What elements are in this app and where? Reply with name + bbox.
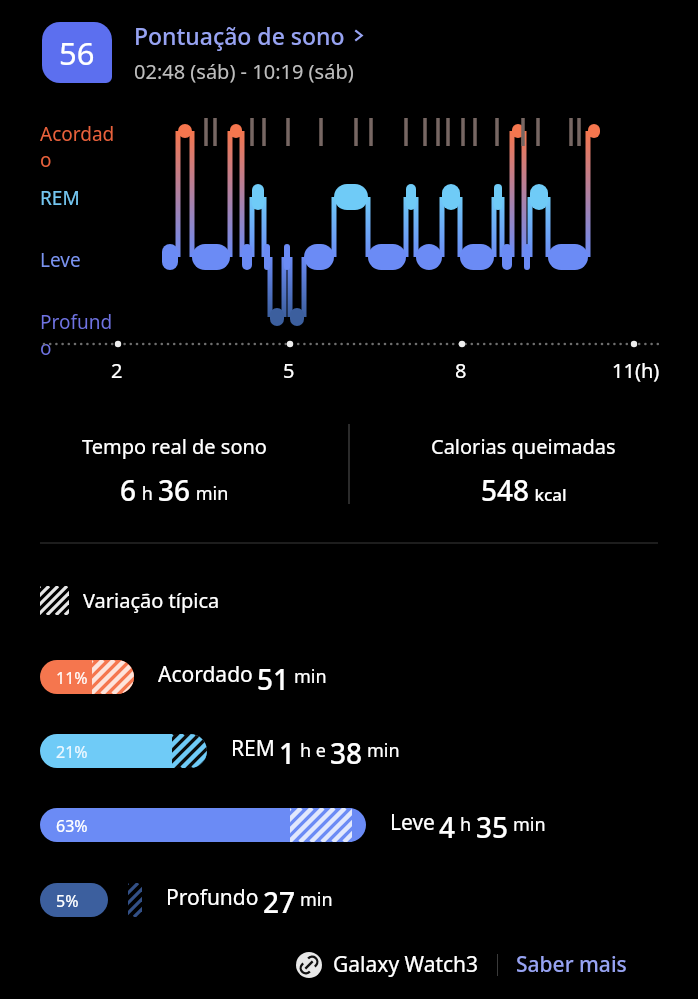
staticText: 21% xyxy=(56,741,88,763)
staticText: Leve xyxy=(40,247,81,273)
button[interactable]: 5% xyxy=(0,873,698,927)
staticText: min xyxy=(191,481,229,506)
staticText: Variação típica xyxy=(83,587,220,614)
staticText: 63% xyxy=(56,815,88,837)
staticText: min xyxy=(294,664,327,689)
staticText: 02:48 (sáb) - 10:19 (sáb) xyxy=(134,58,354,85)
staticText: 38 xyxy=(330,734,363,766)
button[interactable]: 11% xyxy=(0,650,698,704)
staticText: h xyxy=(460,812,472,837)
staticText: 51 xyxy=(257,660,290,692)
staticText: 1 xyxy=(279,734,296,766)
staticText: Acordado xyxy=(158,660,253,689)
staticText: 56 xyxy=(59,32,95,74)
button[interactable]: Connected device Galaxy Watch3 xyxy=(296,952,322,978)
staticText: 35 xyxy=(476,808,509,840)
staticText: 2 xyxy=(111,357,123,384)
button[interactable]: Calorias queimadas xyxy=(349,433,698,509)
button[interactable]: Saber mais xyxy=(516,950,627,979)
staticText: 11% xyxy=(56,667,88,689)
staticText: 8 xyxy=(455,357,467,384)
staticText: 5% xyxy=(56,890,79,912)
staticText: kcal xyxy=(530,483,567,506)
staticText: Leve xyxy=(390,808,435,837)
staticText: h xyxy=(137,481,158,506)
staticText: 27 xyxy=(263,883,296,915)
staticText: Profund o xyxy=(40,309,113,361)
staticText: 36 xyxy=(158,471,191,509)
staticText: h e xyxy=(300,738,326,763)
button[interactable]: 21% xyxy=(0,724,698,778)
staticText: min xyxy=(513,812,546,837)
staticText: REM xyxy=(231,734,275,763)
staticText: REM xyxy=(40,185,80,211)
staticText: Pontuação de sono xyxy=(134,20,345,51)
staticText: 5 xyxy=(283,357,295,384)
staticText: 6 xyxy=(120,471,137,509)
staticText: min xyxy=(367,738,400,763)
staticText: Acordad o xyxy=(40,121,115,173)
staticText: Tempo real de sono xyxy=(82,433,267,460)
staticText: Saber mais xyxy=(516,950,627,979)
staticText: min xyxy=(300,887,333,912)
staticText: Calorias queimadas xyxy=(431,433,616,460)
staticText: 548 xyxy=(481,471,530,509)
button[interactable]: Tempo real de sono xyxy=(0,433,349,509)
staticText: Profundo xyxy=(166,883,259,912)
staticText: 4 xyxy=(439,808,456,840)
staticText: 11(h) xyxy=(612,357,660,384)
button[interactable]: 56 xyxy=(0,20,698,85)
staticText: Galaxy Watch3 xyxy=(333,950,479,979)
button[interactable]: 63% xyxy=(0,798,698,852)
